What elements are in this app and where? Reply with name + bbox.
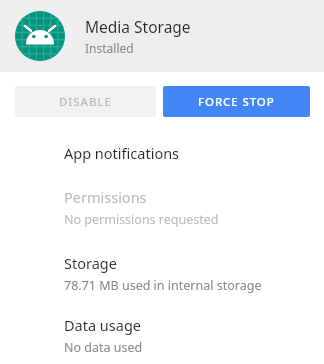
- staticText: Media Storage: [85, 16, 191, 37]
- staticText: Data usage: [64, 315, 141, 335]
- staticText: App notifications: [64, 143, 180, 163]
- staticText: DISABLE: [59, 94, 112, 110]
- button[interactable]: Media Storage app icon: [0, 0, 324, 72]
- button[interactable]: Storage: [0, 240, 324, 306]
- button[interactable]: FORCE STOP: [163, 86, 310, 117]
- other: Media Storage app icon: [15, 11, 65, 61]
- button[interactable]: App notifications: [0, 132, 324, 174]
- staticText: Permissions: [64, 187, 147, 207]
- button[interactable]: DISABLE: [15, 86, 156, 117]
- button[interactable]: Data usage: [0, 306, 324, 364]
- staticText: Installed: [85, 40, 134, 56]
- staticText: No permissions requested: [64, 211, 219, 228]
- button[interactable]: Permissions: [0, 174, 324, 240]
- staticText: No data used: [64, 339, 143, 356]
- staticText: Storage: [64, 253, 117, 273]
- staticText: FORCE STOP: [198, 94, 275, 110]
- staticText: 78.71 MB used in internal storage: [64, 277, 262, 294]
